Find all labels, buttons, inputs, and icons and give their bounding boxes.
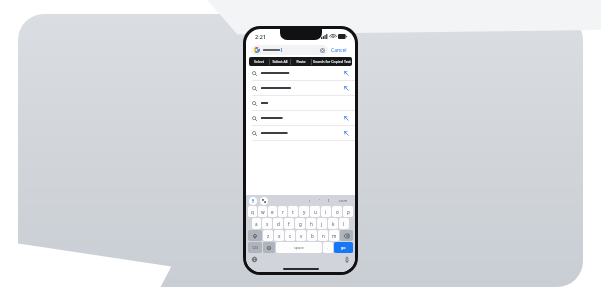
other: Insert suggestion [344, 116, 349, 121]
other: Insert suggestion [344, 86, 349, 91]
staticText: x [278, 233, 281, 239]
staticText: v [300, 233, 303, 239]
staticText: o [336, 209, 339, 215]
staticText: Select [254, 59, 264, 64]
button[interactable]: l [339, 218, 349, 229]
button[interactable]: t [288, 206, 298, 217]
staticText: ' [319, 198, 320, 203]
button[interactable]: x [274, 230, 284, 241]
staticText: s [266, 221, 269, 227]
button[interactable]: Paste [291, 57, 311, 66]
button[interactable]: g [295, 218, 305, 229]
staticText: y [303, 209, 306, 215]
staticText: Cancel [331, 47, 347, 54]
button[interactable]: Cancel [328, 45, 350, 56]
button[interactable]: go [334, 242, 353, 253]
other: Insert suggestion [344, 131, 349, 136]
staticText: r [282, 209, 284, 215]
button[interactable]: Emoji [263, 242, 275, 253]
staticText: space [294, 245, 304, 250]
staticText: t [292, 209, 294, 215]
staticText: Select All [272, 59, 288, 64]
staticText: z [267, 233, 270, 239]
button[interactable]: space [276, 242, 322, 253]
button[interactable]: y [299, 206, 309, 217]
staticText: i [325, 209, 327, 215]
button[interactable]: Select [249, 57, 269, 66]
button[interactable]: p [343, 206, 353, 217]
button[interactable]: .com [334, 196, 352, 205]
staticText: i [309, 198, 311, 203]
button[interactable]: w [258, 206, 267, 217]
staticText: 123 [252, 245, 259, 250]
button[interactable]: z [263, 230, 273, 241]
staticText: f [288, 221, 290, 227]
other: Insert suggestion [344, 71, 349, 76]
staticText: h [310, 221, 313, 227]
staticText: n [322, 233, 325, 239]
staticText: Search for Copied Text [313, 59, 351, 64]
button[interactable]: n [318, 230, 328, 241]
button[interactable]: b [307, 230, 317, 241]
button[interactable]: Insert suggestion [246, 81, 355, 95]
button[interactable]: s [262, 218, 272, 229]
button[interactable]: . [323, 242, 333, 253]
button[interactable]: o [332, 206, 342, 217]
button[interactable]: 123 [248, 242, 262, 253]
button[interactable]: r [278, 206, 287, 217]
staticText: d [277, 221, 280, 227]
staticText: c [289, 233, 292, 239]
other: Clear [320, 48, 325, 53]
button[interactable]: I [324, 196, 334, 205]
button[interactable]: Backspace [340, 230, 353, 241]
button[interactable]: Insert suggestion [246, 66, 355, 80]
button[interactable]: f [284, 218, 294, 229]
button[interactable]: d [273, 218, 283, 229]
staticText: .com [338, 198, 348, 203]
button[interactable]: Change keyboard [252, 257, 257, 262]
staticText: p [347, 209, 350, 215]
staticText: j [321, 221, 323, 227]
button[interactable]: u [310, 206, 320, 217]
button[interactable]: q [248, 206, 257, 217]
staticText: 2:21 [255, 33, 266, 40]
button[interactable] [246, 96, 355, 110]
button[interactable]: Insert suggestion [246, 111, 355, 125]
button[interactable]: c [285, 230, 295, 241]
button[interactable]: j [317, 218, 327, 229]
staticText: I [328, 198, 330, 203]
staticText: go [341, 245, 346, 250]
button[interactable]: v [296, 230, 306, 241]
staticText: w [261, 209, 265, 215]
staticText: u [314, 209, 317, 215]
staticText: Paste [296, 59, 306, 64]
staticText: l [343, 221, 345, 227]
button[interactable]: ' [315, 196, 324, 205]
button[interactable]: m [329, 230, 339, 241]
staticText: a [255, 221, 258, 227]
button[interactable]: i [305, 196, 315, 205]
staticText: m [332, 233, 337, 239]
button[interactable]: Clear [251, 45, 328, 55]
button[interactable]: e [268, 206, 277, 217]
button[interactable]: k [328, 218, 338, 229]
button[interactable]: Voice input [249, 197, 257, 205]
button[interactable]: Shift [248, 230, 262, 241]
staticText: . [327, 245, 329, 250]
staticText: q [251, 209, 254, 215]
staticText: k [332, 221, 335, 227]
staticText: g [299, 221, 302, 227]
button[interactable]: i [321, 206, 331, 217]
button[interactable]: Insert suggestion [246, 126, 355, 140]
button[interactable]: Translate [260, 197, 268, 205]
staticText: e [271, 209, 274, 215]
button[interactable]: Select All [270, 57, 290, 66]
staticText: b [311, 233, 314, 239]
button[interactable]: h [306, 218, 316, 229]
button[interactable]: a [252, 218, 261, 229]
button[interactable]: Search for Copied Text [312, 57, 352, 66]
button[interactable]: Dictation [345, 257, 349, 263]
